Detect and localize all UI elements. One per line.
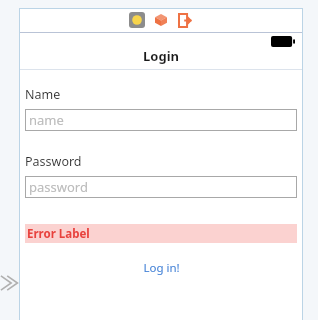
button[interactable]: Exit [177,12,193,28]
button[interactable]: password [25,176,297,198]
button[interactable]: View controller [129,12,145,28]
staticText: Log in! [143,260,180,276]
other: Battery [271,36,295,47]
staticText: Error Label [27,226,90,242]
button[interactable]: Log in! [25,259,297,277]
staticText: Name [25,86,61,103]
staticText: password [29,178,88,196]
button[interactable]: First responder [153,12,169,28]
staticText: name [29,111,64,129]
staticText: Login [143,47,179,65]
button[interactable]: name [25,109,297,131]
other: Initial view controller indicator [0,272,18,294]
staticText: Password [25,153,82,170]
